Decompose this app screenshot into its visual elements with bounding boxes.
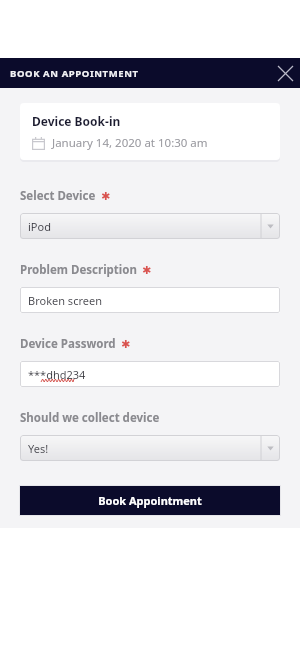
staticText: Should we collect device [20, 410, 160, 426]
button[interactable]: ***dhd234 [20, 361, 280, 387]
button[interactable]: Device Book-in [20, 103, 280, 160]
button[interactable]: Broken screen [20, 287, 280, 313]
button[interactable]: iPod [20, 213, 280, 239]
staticText: January 14, 2020 at 10:30 am [52, 135, 208, 151]
staticText: Select Device [20, 188, 96, 204]
staticText: Device Book-in [32, 113, 121, 129]
staticText: ***dhd234 [28, 367, 86, 382]
staticText: Broken screen [28, 293, 102, 308]
staticText: ✱ [101, 190, 111, 203]
staticText: iPod [28, 219, 51, 234]
staticText: Device Password [20, 336, 116, 352]
staticText: ✱ [142, 264, 152, 277]
button[interactable]: Book Appointment [20, 486, 280, 515]
button[interactable]: Yes! [20, 435, 280, 461]
staticText: Problem Description [20, 262, 137, 278]
staticText: BOOK AN APPOINTMENT [10, 67, 139, 80]
button[interactable]: Close [270, 58, 300, 88]
staticText: ✱ [121, 338, 131, 351]
staticText: Book Appointment [98, 493, 202, 508]
staticText: Yes! [28, 441, 49, 456]
